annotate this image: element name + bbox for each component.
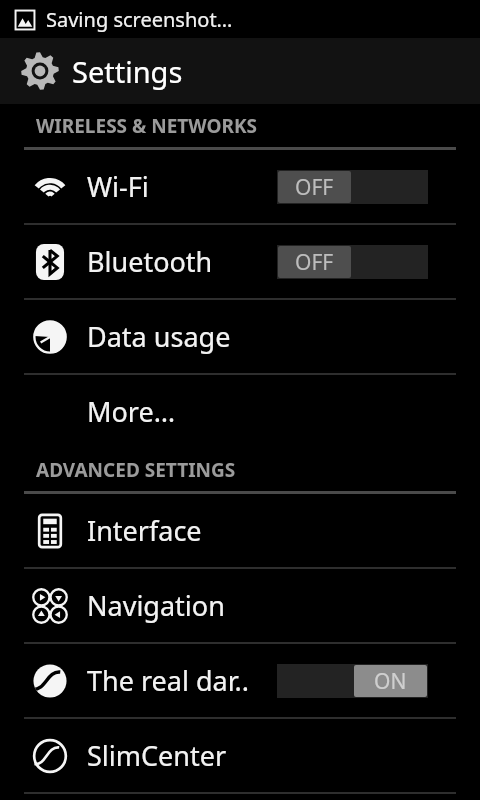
other: SlimCenter: [32, 738, 68, 774]
button[interactable]: Wi-Fi: [0, 150, 480, 223]
button[interactable]: Settings: [0, 38, 480, 104]
button[interactable]: The real dark theme: [0, 644, 480, 717]
staticText: Settings: [72, 52, 183, 91]
button[interactable]: Bluetooth: [0, 225, 480, 298]
other: Data usage: [33, 320, 67, 354]
other: Wi-Fi: [31, 168, 69, 206]
button[interactable]: Interface: [0, 494, 480, 567]
staticText: Navigation: [87, 587, 225, 624]
button[interactable]: SlimCenter: [0, 719, 480, 792]
staticText: The real dar..: [87, 662, 249, 699]
other: Bluetooth: [32, 244, 68, 280]
staticText: Interface: [87, 512, 202, 549]
staticText: ON: [374, 667, 407, 696]
button[interactable]: More…: [0, 375, 480, 448]
other: The real dark theme: [32, 663, 68, 699]
staticText: Saving screenshot…: [46, 6, 233, 33]
button[interactable]: OFF: [277, 170, 428, 204]
staticText: WIRELESS & NETWORKS: [36, 113, 258, 139]
button[interactable]: Data usage: [0, 300, 480, 373]
staticText: SlimCenter: [87, 737, 227, 774]
other: Navigation: [32, 588, 68, 624]
staticText: Wi-Fi: [87, 168, 149, 205]
staticText: OFF: [295, 248, 334, 277]
button[interactable]: ON: [277, 664, 428, 698]
staticText: ADVANCED SETTINGS: [36, 457, 236, 483]
other: Interface: [32, 513, 68, 549]
staticText: More…: [87, 393, 176, 430]
staticText: Bluetooth: [87, 243, 213, 280]
staticText: Data usage: [87, 318, 231, 355]
staticText: OFF: [295, 173, 334, 202]
button[interactable]: Navigation: [0, 569, 480, 642]
button[interactable]: OFF: [277, 245, 428, 279]
